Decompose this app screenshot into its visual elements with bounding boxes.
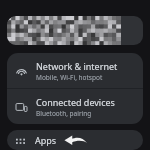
button[interactable]: Apps: [7, 130, 143, 150]
staticText: Bluetooth, pairing: [36, 109, 92, 118]
staticText: Mobile, Wi-Fi, hotspot: [36, 73, 103, 82]
button[interactable]: Wi-Fi: [7, 53, 143, 88]
staticText: Network & internet: [36, 60, 118, 72]
other: Apps: [16, 136, 25, 145]
other: Connected devices: [16, 102, 27, 113]
button[interactable]: Connected devices: [7, 89, 143, 124]
other: Wi-Fi: [16, 66, 27, 77]
staticText: Connected devices: [36, 96, 115, 108]
staticText: Apps: [35, 134, 57, 146]
